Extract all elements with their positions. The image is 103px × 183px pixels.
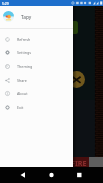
staticText: Refresh <box>17 37 31 42</box>
button[interactable]: About <box>0 86 73 100</box>
staticText: Exit <box>17 105 24 110</box>
staticText: Theming <box>17 64 33 69</box>
button[interactable]: Settings <box>0 45 73 59</box>
staticText: FIRE <box>71 158 87 168</box>
button[interactable]: FIRE <box>0 157 90 169</box>
button[interactable]: Exit <box>0 100 73 114</box>
staticText: Share <box>17 78 27 83</box>
button[interactable]: Refresh <box>0 32 73 46</box>
staticText: Settings <box>17 50 32 55</box>
button[interactable] <box>89 157 103 169</box>
button[interactable]: Theming <box>0 59 73 73</box>
staticText: 5:29 <box>2 1 9 5</box>
staticText: About <box>17 91 28 96</box>
staticText: Tapy <box>21 14 32 20</box>
button[interactable]: Share <box>0 73 73 87</box>
